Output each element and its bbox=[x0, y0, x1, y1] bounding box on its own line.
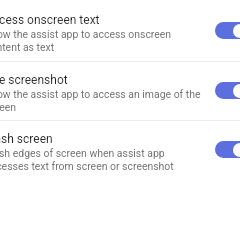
button[interactable]: Flash screen bbox=[215, 141, 240, 158]
staticText: Flash edges of screen when assist app ac… bbox=[0, 147, 174, 172]
button[interactable]: Use screenshot bbox=[215, 82, 240, 99]
staticText: Allow the assist app to access onscreen … bbox=[0, 28, 172, 53]
button[interactable]: Flash screen bbox=[0, 119, 240, 178]
staticText: Flash screen bbox=[0, 132, 53, 146]
button[interactable]: Access onscreen text bbox=[215, 22, 240, 39]
staticText: Access onscreen text bbox=[0, 13, 100, 27]
staticText: Allow the assist app to access an image … bbox=[0, 88, 201, 113]
staticText: Use screenshot bbox=[0, 73, 68, 87]
button[interactable]: Use screenshot bbox=[0, 60, 240, 119]
button[interactable]: Access onscreen text bbox=[0, 0, 240, 59]
